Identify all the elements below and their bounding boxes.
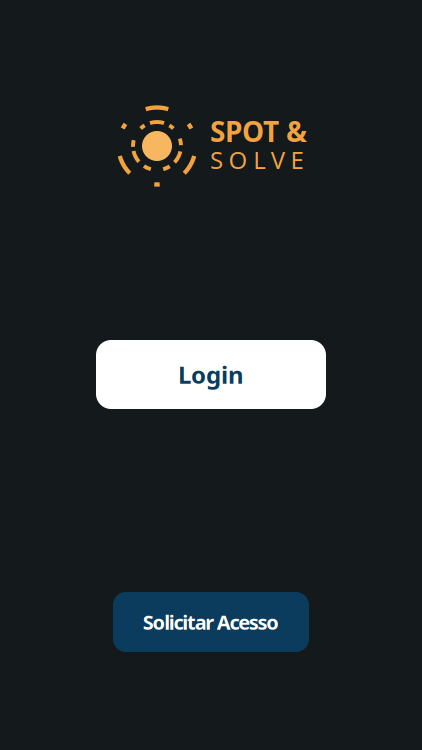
button[interactable]: Login [96,340,326,409]
staticText: Solicitar Acesso [143,609,279,635]
staticText: SPOT & [210,112,307,150]
staticText: Login [178,359,244,390]
button[interactable]: Solicitar Acesso [113,592,309,652]
staticText: SOLVE [210,144,303,176]
